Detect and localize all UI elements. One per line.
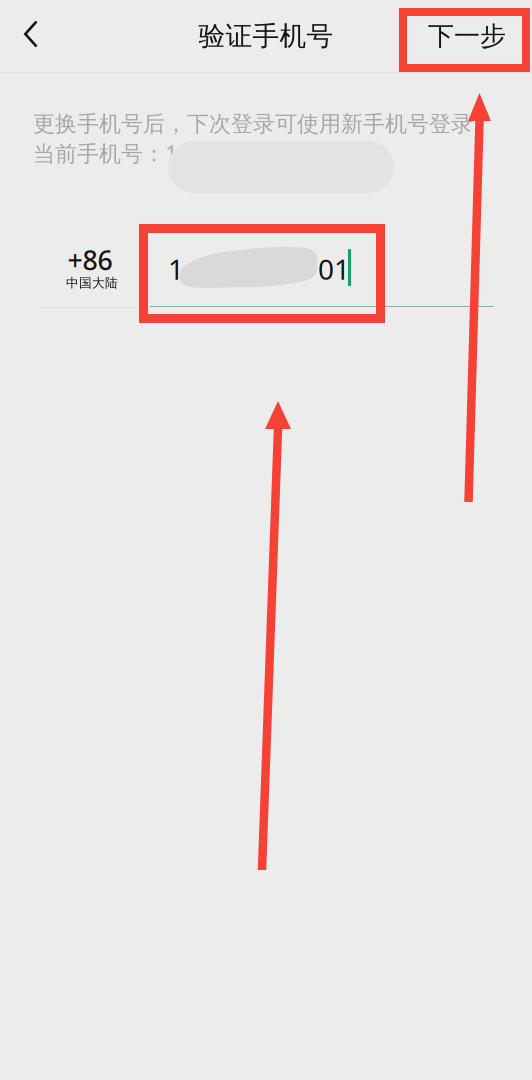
staticText: 1 [168,250,184,288]
staticText: 下一步 [428,20,506,52]
staticText: 验证手机号 [198,19,333,53]
button[interactable]: 下一步 [411,0,523,72]
button[interactable]: 返回 [4,0,58,70]
staticText: +86 [67,242,112,278]
staticText: 01 [318,250,350,288]
staticText: 更换手机号后，下次登录可使用新手机号登录。 [33,110,495,138]
staticText: 当前手机号：1 [33,138,178,168]
staticText: 中国大陆 [66,275,118,291]
